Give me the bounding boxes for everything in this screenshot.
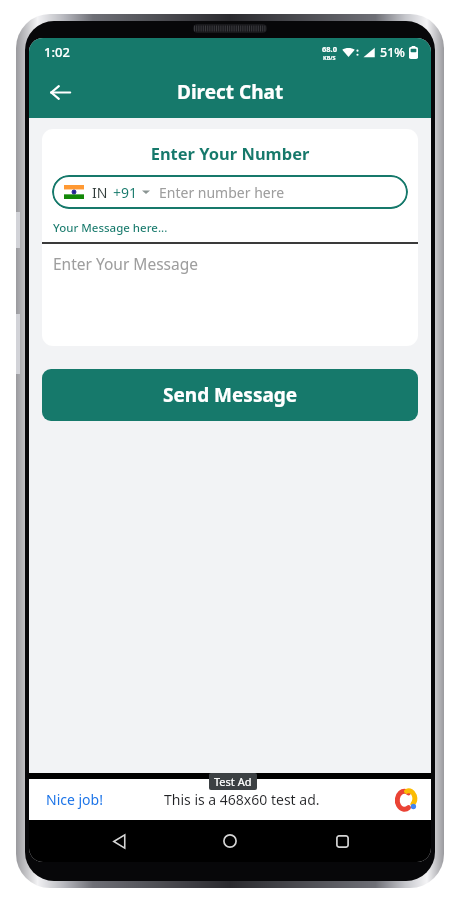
button[interactable]: Send Message [42,369,418,421]
staticText: Test Ad [214,774,252,789]
staticText: Enter Your Message [53,253,198,274]
staticText: This is a 468x60 test ad. [164,790,320,809]
other: AdMob [393,787,419,813]
staticText: KB/S [323,54,336,61]
staticText: Nice job! [46,790,103,809]
staticText: 1:02 [44,43,70,61]
staticText: Send Message [163,382,298,408]
staticText: Enter number here [159,183,285,202]
button[interactable]: Back [97,820,141,862]
button[interactable]: Home [208,820,252,862]
button[interactable]: Enter Your Message [42,244,418,346]
button[interactable]: IN [52,175,408,209]
staticText: 68.0 [322,44,337,54]
staticText: IN [92,183,108,202]
staticText: Your Message here... [53,220,168,236]
staticText: Enter Your Number [42,142,418,164]
button[interactable]: Back [39,71,81,113]
button[interactable]: Nice job! [29,779,431,820]
staticText: Direct Chat [177,79,284,105]
button[interactable]: Recent apps [320,820,364,862]
staticText: 51% [380,44,405,61]
staticText: +91 [113,183,138,202]
